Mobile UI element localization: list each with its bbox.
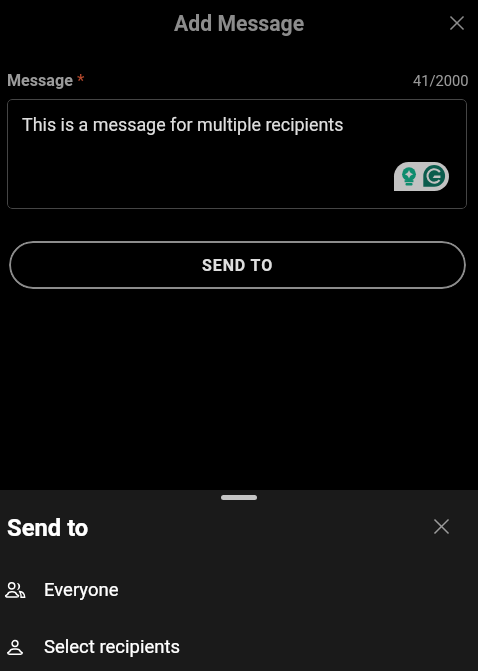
staticText: This is a message for multiple recipient… [22, 114, 344, 135]
button[interactable]: Everyone [0, 572, 478, 608]
button[interactable]: SEND TO [9, 241, 466, 289]
staticText: Send to [7, 514, 89, 542]
button[interactable]: Grammarly [394, 162, 449, 191]
staticText: 41/2000 [413, 72, 469, 89]
staticText: Add Message [174, 11, 305, 36]
staticText: Select recipients [44, 636, 181, 658]
staticText: Message [7, 71, 73, 90]
button[interactable]: Close [437, 3, 477, 43]
staticText: Everyone [44, 579, 119, 601]
button[interactable]: Select recipients [0, 629, 478, 665]
button[interactable]: Close [421, 506, 461, 546]
staticText: SEND TO [202, 256, 274, 275]
button[interactable]: This is a message for multiple recipient… [7, 99, 467, 209]
staticText: * [73, 71, 85, 90]
